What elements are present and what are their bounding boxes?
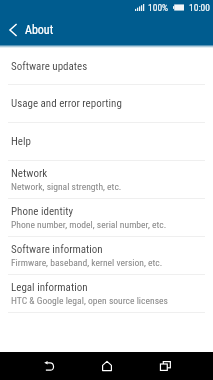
button[interactable]: Home xyxy=(78,352,136,380)
button[interactable]: Usage and error reporting xyxy=(0,85,213,123)
staticText: Help xyxy=(11,135,31,148)
staticText: Firmware, baseband, kernel version, etc. xyxy=(11,257,163,268)
staticText: Phone number, model, serial number, etc. xyxy=(11,219,167,230)
staticText: Phone identity xyxy=(11,205,74,218)
staticText: Network, signal strength, etc. xyxy=(11,181,122,192)
staticText: HTC & Google legal, open source licenses xyxy=(11,295,168,306)
button[interactable]: Back xyxy=(20,352,78,380)
staticText: 100% xyxy=(148,2,169,13)
staticText: Software information xyxy=(11,243,103,256)
staticText: Software updates xyxy=(11,60,88,73)
staticText: Legal information xyxy=(11,281,88,294)
button[interactable]: Software updates xyxy=(0,45,213,85)
button[interactable]: Phone identity xyxy=(0,199,213,237)
staticText: Usage and error reporting xyxy=(11,97,122,110)
staticText: Network xyxy=(11,167,48,180)
button[interactable]: Help xyxy=(0,123,213,161)
button[interactable]: Network xyxy=(0,161,213,199)
staticText: About xyxy=(25,23,54,37)
button[interactable]: Navigate up xyxy=(0,14,64,46)
button[interactable]: Legal information xyxy=(0,275,213,313)
button[interactable]: Recent apps xyxy=(136,352,194,380)
staticText: 10:00 xyxy=(189,2,210,13)
button[interactable]: Software information xyxy=(0,237,213,275)
other: Navigate up xyxy=(9,24,17,36)
